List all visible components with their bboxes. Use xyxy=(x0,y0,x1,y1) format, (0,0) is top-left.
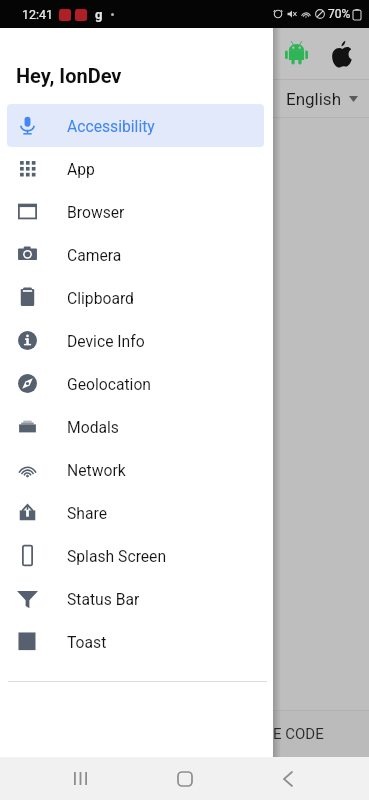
staticText: Camera xyxy=(67,246,122,264)
staticText: App xyxy=(67,160,95,178)
button[interactable]: App xyxy=(7,147,264,190)
button[interactable]: Share xyxy=(7,491,264,534)
staticText: 12:41 xyxy=(22,7,54,22)
staticText: Status Bar xyxy=(67,590,140,608)
staticText: g xyxy=(95,7,103,22)
staticText: E CODE xyxy=(273,725,324,743)
staticText: Geolocation xyxy=(67,375,152,393)
staticText: Network xyxy=(67,461,126,479)
staticText: Clipboard xyxy=(67,289,134,307)
button[interactable]: Clipboard xyxy=(7,276,264,319)
button[interactable]: Android xyxy=(285,41,308,67)
button[interactable]: Status Bar xyxy=(7,577,264,620)
staticText: Device Info xyxy=(67,332,145,350)
button[interactable]: Camera xyxy=(7,233,264,276)
button[interactable]: Home xyxy=(161,757,209,800)
staticText: Toast xyxy=(67,633,107,651)
button[interactable]: Recents xyxy=(56,757,104,800)
staticText: Modals xyxy=(67,418,119,436)
staticText: Accessibility xyxy=(67,117,155,135)
button[interactable]: Geolocation xyxy=(7,362,264,405)
button[interactable]: Apple xyxy=(331,40,354,68)
button[interactable]: Modals xyxy=(7,405,264,448)
staticText: 70% xyxy=(328,7,351,21)
staticText: Splash Screen xyxy=(67,547,167,565)
button[interactable]: Network xyxy=(7,448,264,491)
staticText: English xyxy=(286,89,342,109)
button[interactable]: Accessibility xyxy=(7,104,264,147)
button[interactable]: Splash Screen xyxy=(7,534,264,577)
staticText: Hey, IonDev xyxy=(16,64,122,87)
staticText: Share xyxy=(67,504,107,522)
button[interactable]: Back xyxy=(264,757,312,800)
button[interactable]: Toast xyxy=(7,620,264,663)
button[interactable]: Device Info xyxy=(7,319,264,362)
staticText: Browser xyxy=(67,203,125,221)
button[interactable]: Browser xyxy=(7,190,264,233)
